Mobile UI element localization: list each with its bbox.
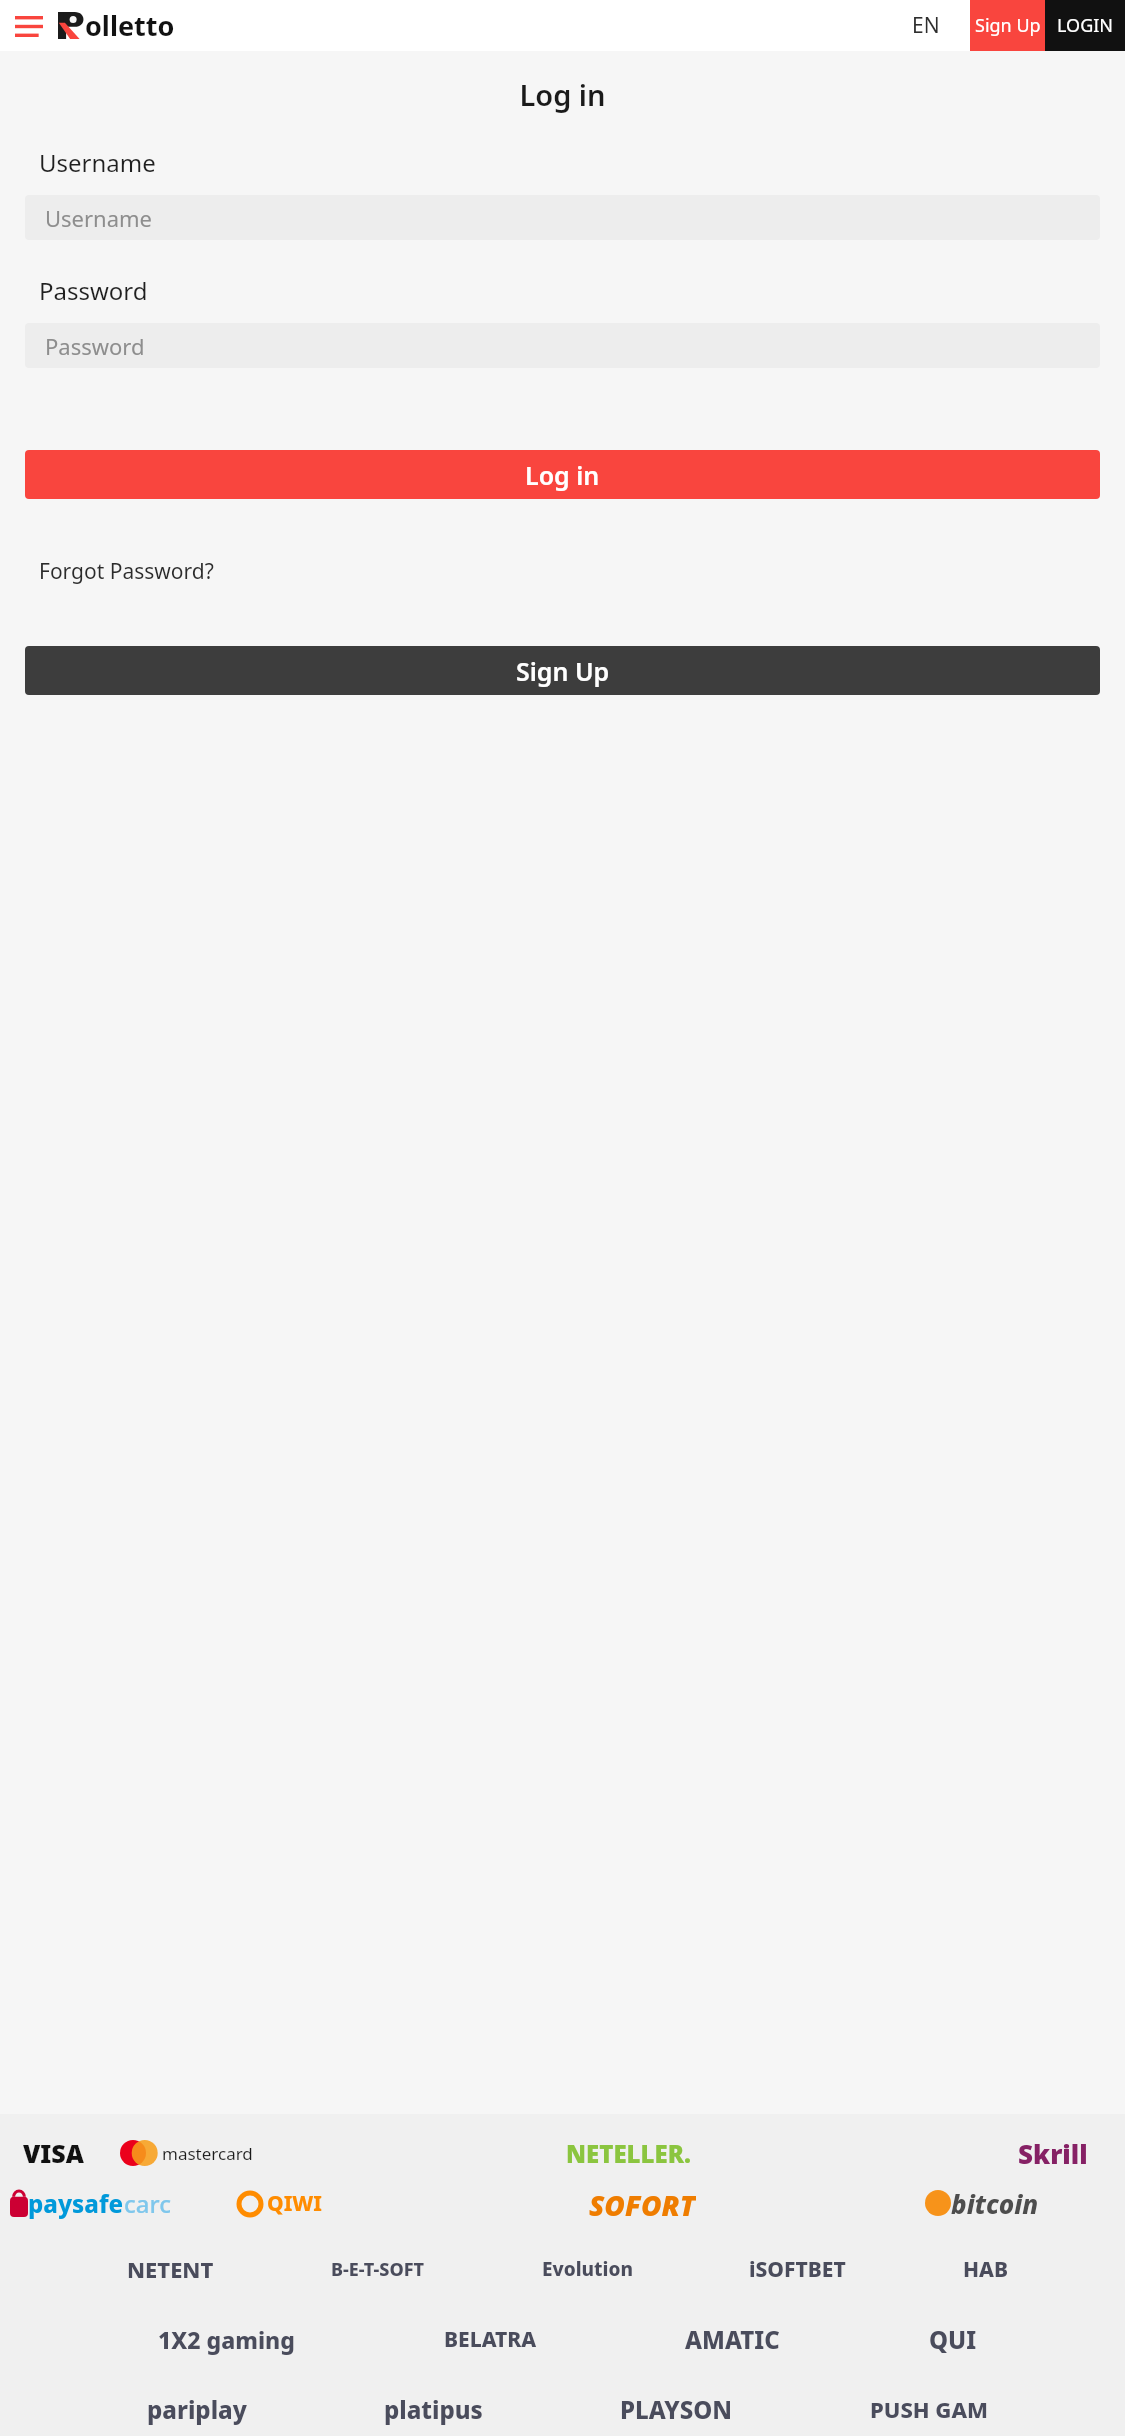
- button[interactable]: EN: [896, 11, 956, 40]
- staticText: mastercard: [162, 2142, 253, 2165]
- staticText: QIWI: [267, 2189, 323, 2218]
- staticText: Forgot Password?: [39, 557, 214, 586]
- staticText: olletto: [85, 7, 175, 44]
- button[interactable]: Log in: [25, 450, 1100, 499]
- staticText: VISA: [23, 2136, 84, 2170]
- staticText: LOGIN: [1057, 13, 1114, 38]
- staticText: B-E-T-SOFT: [331, 2257, 425, 2282]
- staticText: Sign Up: [516, 654, 610, 688]
- staticText: paysafe: [28, 2187, 124, 2220]
- staticText: pariplay: [147, 2393, 247, 2426]
- staticText: EN: [912, 11, 940, 40]
- staticText: PUSH GAM: [870, 2394, 988, 2424]
- staticText: Username: [45, 203, 153, 233]
- staticText: PLAYSON: [620, 2393, 733, 2426]
- staticText: Evolution: [542, 2256, 633, 2282]
- staticText: AMATIC: [685, 2323, 780, 2356]
- staticText: Log in: [525, 458, 600, 492]
- button[interactable]: Menu: [9, 6, 49, 46]
- staticText: bitcoin: [951, 2186, 1039, 2220]
- button[interactable]: LOGIN: [1045, 0, 1125, 51]
- staticText: carc: [124, 2187, 171, 2220]
- staticText: NETENT: [127, 2254, 214, 2284]
- staticText: Sign Up: [975, 13, 1041, 38]
- staticText: platipus: [384, 2393, 483, 2426]
- staticText: Password: [39, 274, 148, 307]
- staticText: SOFORT: [589, 2186, 696, 2220]
- button[interactable]: Forgot Password?: [39, 557, 214, 586]
- staticText: Password: [45, 331, 145, 361]
- staticText: NETELLER.: [566, 2137, 691, 2170]
- staticText: Username: [39, 146, 156, 179]
- button[interactable]: Sign Up: [970, 0, 1045, 51]
- staticText: Log in: [0, 75, 1125, 114]
- staticText: BELATRA: [444, 2325, 537, 2354]
- button[interactable]: Sign Up: [25, 646, 1100, 695]
- staticText: iSOFTBET: [749, 2255, 846, 2284]
- staticText: 1X2 gaming: [158, 2324, 295, 2355]
- button[interactable]: Password: [25, 323, 1100, 368]
- staticText: HAB: [963, 2255, 1008, 2284]
- staticText: Skrill: [1018, 2136, 1088, 2170]
- staticText: QUI: [929, 2323, 977, 2356]
- button[interactable]: Username: [25, 195, 1100, 240]
